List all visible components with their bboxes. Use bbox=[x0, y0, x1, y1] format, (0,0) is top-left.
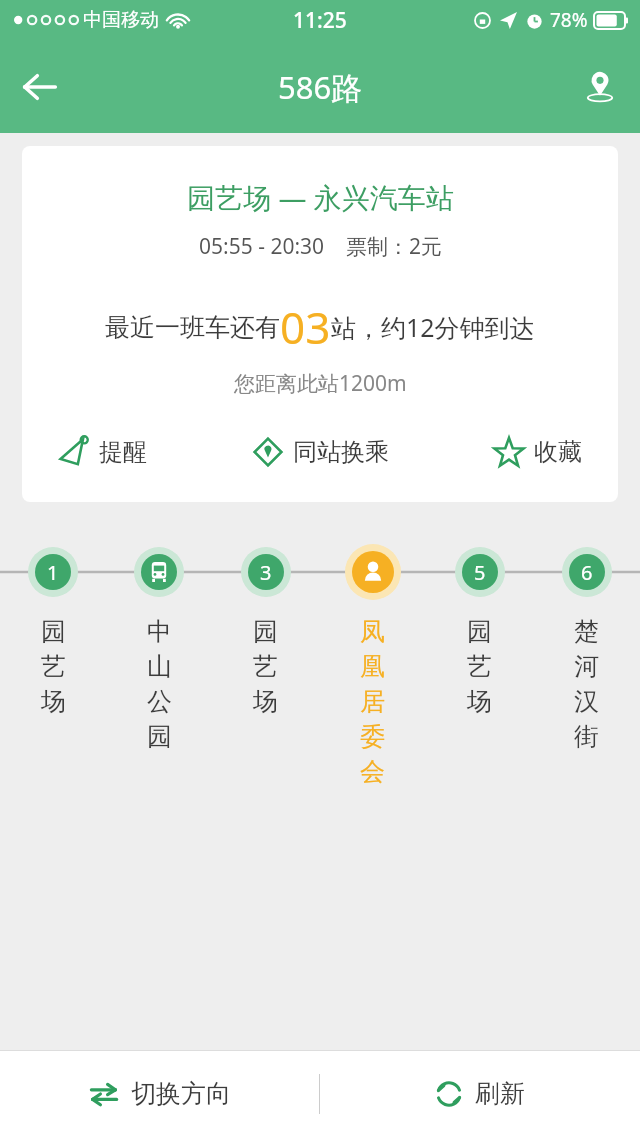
staticText: 您距离此站1200m bbox=[234, 369, 407, 398]
staticText: 站，约12分钟到达 bbox=[331, 310, 535, 344]
button[interactable]: 中 bbox=[106, 534, 212, 754]
staticText: 切换方向 bbox=[131, 1078, 231, 1109]
button[interactable]: 收藏 bbox=[489, 432, 586, 472]
staticText: 艺 bbox=[467, 651, 492, 682]
staticText: 凰 bbox=[360, 651, 385, 682]
staticText: 园艺场 — 永兴汽车站 bbox=[187, 178, 454, 216]
staticText: 1 bbox=[47, 559, 59, 586]
button[interactable]: Back bbox=[8, 55, 72, 119]
button[interactable]: Map location bbox=[568, 55, 632, 119]
staticText: 楚 bbox=[574, 616, 599, 647]
staticText: 艺 bbox=[253, 651, 278, 682]
staticText: 山 bbox=[147, 651, 172, 682]
staticText: 公 bbox=[147, 686, 172, 717]
staticText: 会 bbox=[360, 756, 385, 787]
staticText: 场 bbox=[253, 686, 278, 717]
staticText: 5 bbox=[474, 559, 486, 586]
button[interactable]: 刷新 bbox=[320, 1051, 640, 1136]
staticText: 同站换乘 bbox=[293, 437, 389, 467]
button[interactable]: 3 bbox=[212, 534, 319, 719]
button[interactable]: 5 bbox=[426, 534, 533, 719]
button[interactable]: 凤 bbox=[319, 534, 426, 789]
button[interactable]: 同站换乘 bbox=[248, 432, 393, 472]
staticText: 园 bbox=[41, 616, 66, 647]
staticText: 刷新 bbox=[475, 1078, 525, 1109]
staticText: 街 bbox=[574, 721, 599, 752]
button[interactable]: 1 bbox=[0, 534, 106, 719]
staticText: 78% bbox=[550, 7, 588, 33]
staticText: 586路 bbox=[278, 66, 363, 108]
staticText: 05:55 - 20:30 票制：2元 bbox=[199, 232, 442, 261]
button[interactable]: 切换方向 bbox=[0, 1051, 319, 1136]
staticText: 3 bbox=[260, 559, 272, 586]
staticText: 场 bbox=[41, 686, 66, 717]
staticText: 最近一班车还有 bbox=[105, 312, 280, 343]
staticText: 园 bbox=[147, 721, 172, 752]
staticText: 园 bbox=[467, 616, 492, 647]
staticText: 园 bbox=[253, 616, 278, 647]
staticText: 6 bbox=[581, 559, 593, 586]
button[interactable]: 6 bbox=[533, 534, 640, 754]
staticText: 提醒 bbox=[99, 437, 147, 467]
staticText: 场 bbox=[467, 686, 492, 717]
staticText: 中国移动 bbox=[83, 8, 159, 32]
button[interactable]: 提醒 bbox=[54, 432, 151, 472]
staticText: 河 bbox=[574, 651, 599, 682]
staticText: 11:25 bbox=[293, 6, 347, 35]
staticText: 03 bbox=[280, 297, 331, 357]
staticText: 汉 bbox=[574, 686, 599, 717]
staticText: 凤 bbox=[360, 616, 385, 647]
staticText: 艺 bbox=[41, 651, 66, 682]
staticText: 居 bbox=[360, 686, 385, 717]
staticText: 委 bbox=[360, 721, 385, 752]
button[interactable]: 园艺场 — 永兴汽车站 bbox=[22, 146, 618, 502]
staticText: 中 bbox=[147, 616, 172, 647]
staticText: 收藏 bbox=[534, 437, 582, 467]
